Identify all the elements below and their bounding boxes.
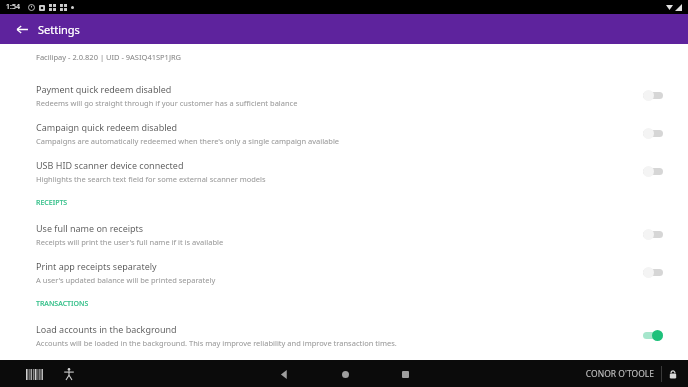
staticText: Payment quick redeem disabled [36,83,172,95]
staticText: USB HID scanner device connected [36,159,184,171]
button[interactable]: Back [10,17,34,41]
button[interactable]: Toggle off [640,264,666,280]
button[interactable]: Barcode [22,363,44,385]
button[interactable]: Load accounts in the background [0,316,688,354]
button[interactable]: CONOR O'TOOLE [585,368,654,380]
staticText: TRANSACTIONS [36,299,89,309]
staticText: Campaign quick redeem disabled [36,121,178,133]
staticText: Campaigns are automatically redeemed whe… [36,136,340,146]
staticText: Print app receipts separately [36,260,157,272]
button[interactable]: Toggle on [640,327,666,343]
button[interactable]: Campaign quick redeem disabled [0,114,688,152]
button[interactable]: Home [333,362,357,386]
staticText: Facilipay - 2.0.820 | UID - 9ASIQ41SP1JR… [36,52,182,62]
button[interactable]: Accessibility [58,363,80,385]
staticText: Settings [38,22,80,37]
button[interactable]: Payment quick redeem disabled [0,76,688,114]
staticText: Receipts will print the user's full name… [36,237,224,247]
staticText: 1:54 [6,2,20,12]
button[interactable]: Use full name on receipts [0,215,688,253]
button[interactable]: Toggle off [640,163,666,179]
staticText: Redeems will go straight through if your… [36,98,298,108]
button[interactable]: Print app receipts separately [0,253,688,291]
staticText: Use full name on receipts [36,222,144,234]
staticText: Accounts will be loaded in the backgroun… [36,338,397,348]
staticText: Highlights the search text field for som… [36,174,266,184]
staticText: RECEIPTS [36,198,68,208]
button[interactable]: Toggle off [640,87,666,103]
button[interactable]: Lock [662,363,684,385]
button[interactable]: Back [272,362,296,386]
button[interactable]: USB HID scanner device connected [0,152,688,190]
button[interactable]: Recents [393,362,417,386]
staticText: Load accounts in the background [36,323,177,335]
button[interactable]: Toggle off [640,226,666,242]
staticText: A user's updated balance will be printed… [36,275,216,285]
button[interactable]: Toggle off [640,125,666,141]
